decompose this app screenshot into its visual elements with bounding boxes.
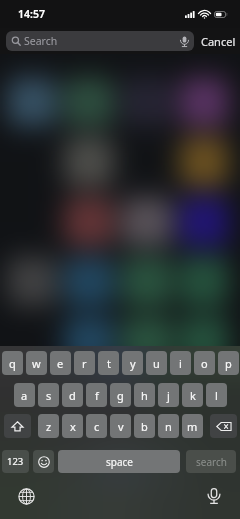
button[interactable]: t	[98, 351, 119, 375]
button[interactable]: p	[218, 351, 239, 375]
staticText: Cancel	[201, 34, 236, 49]
button[interactable]: space	[58, 450, 180, 473]
button[interactable]: x	[62, 414, 83, 438]
button[interactable]: v	[110, 414, 131, 438]
staticText: q	[9, 356, 16, 371]
button[interactable]: Dictate	[203, 485, 225, 507]
staticText: l	[215, 388, 218, 403]
staticText: space	[106, 455, 133, 469]
staticText: k	[190, 388, 196, 403]
button[interactable]: 123	[2, 450, 29, 473]
staticText: b	[141, 419, 148, 434]
button[interactable]: w	[26, 351, 47, 375]
button[interactable]: d	[62, 383, 83, 407]
button[interactable]: Cancel	[200, 32, 237, 51]
button[interactable]: k	[182, 383, 203, 407]
staticText: h	[141, 388, 148, 403]
button[interactable]: n	[158, 414, 179, 438]
button[interactable]: r	[74, 351, 95, 375]
button[interactable]: Voice search	[178, 35, 190, 47]
button[interactable]: i	[170, 351, 191, 375]
staticText: search	[196, 455, 227, 469]
button[interactable]: e	[50, 351, 71, 375]
staticText: a	[21, 388, 28, 403]
button[interactable]: j	[158, 383, 179, 407]
button[interactable]: g	[110, 383, 131, 407]
button[interactable]: o	[194, 351, 215, 375]
button[interactable]: z	[38, 414, 59, 438]
button[interactable]: a	[14, 383, 35, 407]
button[interactable]: f	[86, 383, 107, 407]
staticText: g	[117, 388, 124, 403]
staticText: w	[32, 356, 41, 371]
button[interactable]: s	[38, 383, 59, 407]
staticText: j	[167, 388, 170, 403]
staticText: c	[94, 419, 100, 434]
staticText: Search	[24, 34, 58, 48]
staticText: d	[69, 388, 76, 403]
staticText: s	[46, 388, 52, 403]
staticText: t	[107, 356, 111, 371]
button[interactable]: l	[206, 383, 227, 407]
button[interactable]: Emoji	[33, 450, 54, 473]
button[interactable]: m	[182, 414, 203, 438]
button[interactable]: c	[86, 414, 107, 438]
button[interactable]: Search	[6, 31, 194, 51]
staticText: n	[165, 419, 172, 434]
button[interactable]: search	[186, 450, 236, 473]
staticText: u	[153, 356, 160, 371]
staticText: 123	[7, 455, 24, 468]
staticText: o	[201, 356, 208, 371]
staticText: m	[187, 419, 198, 434]
button[interactable]: Change keyboard	[15, 485, 37, 507]
button[interactable]: h	[134, 383, 155, 407]
button[interactable]: y	[122, 351, 143, 375]
staticText: v	[118, 419, 124, 434]
button[interactable]: u	[146, 351, 167, 375]
button[interactable]: Backspace	[210, 414, 237, 438]
staticText: y	[130, 356, 136, 371]
staticText: 14:57	[18, 7, 45, 21]
staticText: p	[225, 356, 232, 371]
staticText: r	[82, 356, 87, 371]
staticText: e	[57, 356, 64, 371]
staticText: z	[46, 419, 52, 434]
staticText: x	[70, 419, 76, 434]
button[interactable]: q	[2, 351, 23, 375]
button[interactable]: Shift	[4, 414, 31, 438]
staticText: f	[95, 388, 99, 403]
staticText: i	[179, 356, 182, 371]
button[interactable]: b	[134, 414, 155, 438]
